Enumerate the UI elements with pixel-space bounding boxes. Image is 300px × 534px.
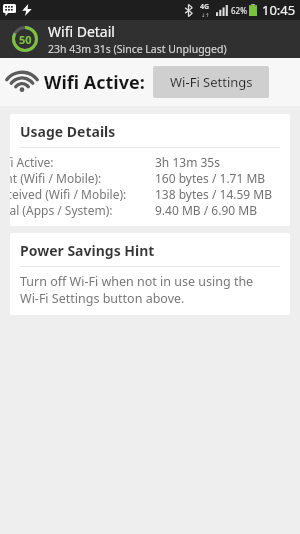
staticText: Sent (Wifi / Mobile): [10,170,137,186]
button[interactable]: Usage Details [10,114,290,226]
staticText: 10:45 [262,1,296,19]
staticText: Received (Wifi / Mobile): [10,186,137,202]
staticText: 4G [200,2,210,12]
staticText: 3h 13m 35s [155,154,220,170]
staticText: Total (Apps / System): [10,202,137,218]
button[interactable]: Wi-Fi Settings [153,66,269,98]
button[interactable]: Power Savings Hint [10,233,290,315]
staticText: ↓↑ [201,12,210,18]
staticText: Usage Details [20,122,116,141]
staticText: Wifi Active: [10,154,137,170]
button[interactable]: 50 [0,20,300,58]
staticText: Wifi Detail [48,22,115,41]
staticText: 62% [231,5,247,16]
staticText: 9.40 MB / 6.90 MB [155,202,257,218]
staticText: Wifi Active: [44,70,145,95]
staticText: 160 bytes / 1.71 MB [155,170,266,186]
staticText: 138 bytes / 14.59 MB [155,186,273,202]
staticText: Power Savings Hint [20,241,155,260]
staticText: 23h 43m 31s (Since Last Unplugged) [48,42,227,56]
staticText: Turn off Wi-Fi when not in use using the… [20,273,272,306]
staticText: Wi-Fi Settings [170,73,253,91]
staticText: 50 [19,32,32,47]
